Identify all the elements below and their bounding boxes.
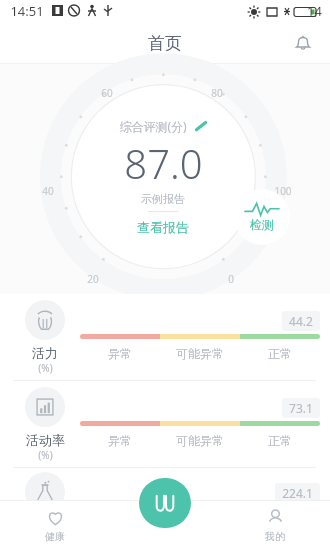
staticText: 活动率	[26, 432, 65, 448]
staticText: 综合评测(分)	[119, 118, 187, 134]
staticText: 我的	[265, 530, 285, 543]
staticText: 224.1	[282, 485, 313, 501]
staticText: 活力	[32, 345, 58, 361]
staticText: 100	[274, 184, 292, 198]
staticText: 可能异常	[176, 518, 224, 533]
staticText: 正常	[268, 518, 292, 533]
button[interactable]: 血压	[0, 468, 330, 550]
staticText: 60	[101, 86, 113, 100]
button[interactable]: 查看报告	[131, 217, 195, 237]
staticText: 可能异常	[176, 433, 224, 448]
staticText: (%)	[38, 533, 53, 547]
staticText: 44.2	[289, 313, 313, 329]
staticText: 健康	[45, 530, 65, 543]
staticText: 14:51	[10, 2, 44, 20]
staticText: 40	[42, 184, 54, 198]
button[interactable]: 健康	[0, 500, 110, 550]
button[interactable]: Notifications	[284, 24, 322, 62]
staticText: 查看报告	[137, 219, 189, 235]
button[interactable]: 我的	[220, 500, 330, 550]
staticText: 正常	[268, 346, 292, 361]
staticText: 20	[87, 272, 99, 286]
staticText: (%)	[38, 361, 53, 375]
staticText: 73.1	[289, 400, 313, 416]
staticText: 异常	[108, 433, 132, 448]
staticText: (%)	[38, 448, 53, 462]
staticText: 可能异常	[176, 346, 224, 361]
staticText: 14	[307, 2, 322, 20]
button[interactable]: 检测	[234, 189, 290, 245]
staticText: 80	[211, 86, 223, 100]
staticText: 血压	[32, 517, 58, 533]
staticText: 87.0	[124, 136, 203, 190]
staticText: 示例报告	[141, 192, 185, 206]
staticText: 异常	[108, 346, 132, 361]
button[interactable]: 活动率	[0, 381, 330, 467]
button[interactable]: 活力	[0, 294, 330, 380]
staticText: 正常	[268, 433, 292, 448]
staticText: 检测	[250, 217, 274, 232]
button[interactable]: Measure	[139, 478, 191, 528]
staticText: 首页	[148, 33, 182, 54]
staticText: 0	[228, 272, 234, 286]
